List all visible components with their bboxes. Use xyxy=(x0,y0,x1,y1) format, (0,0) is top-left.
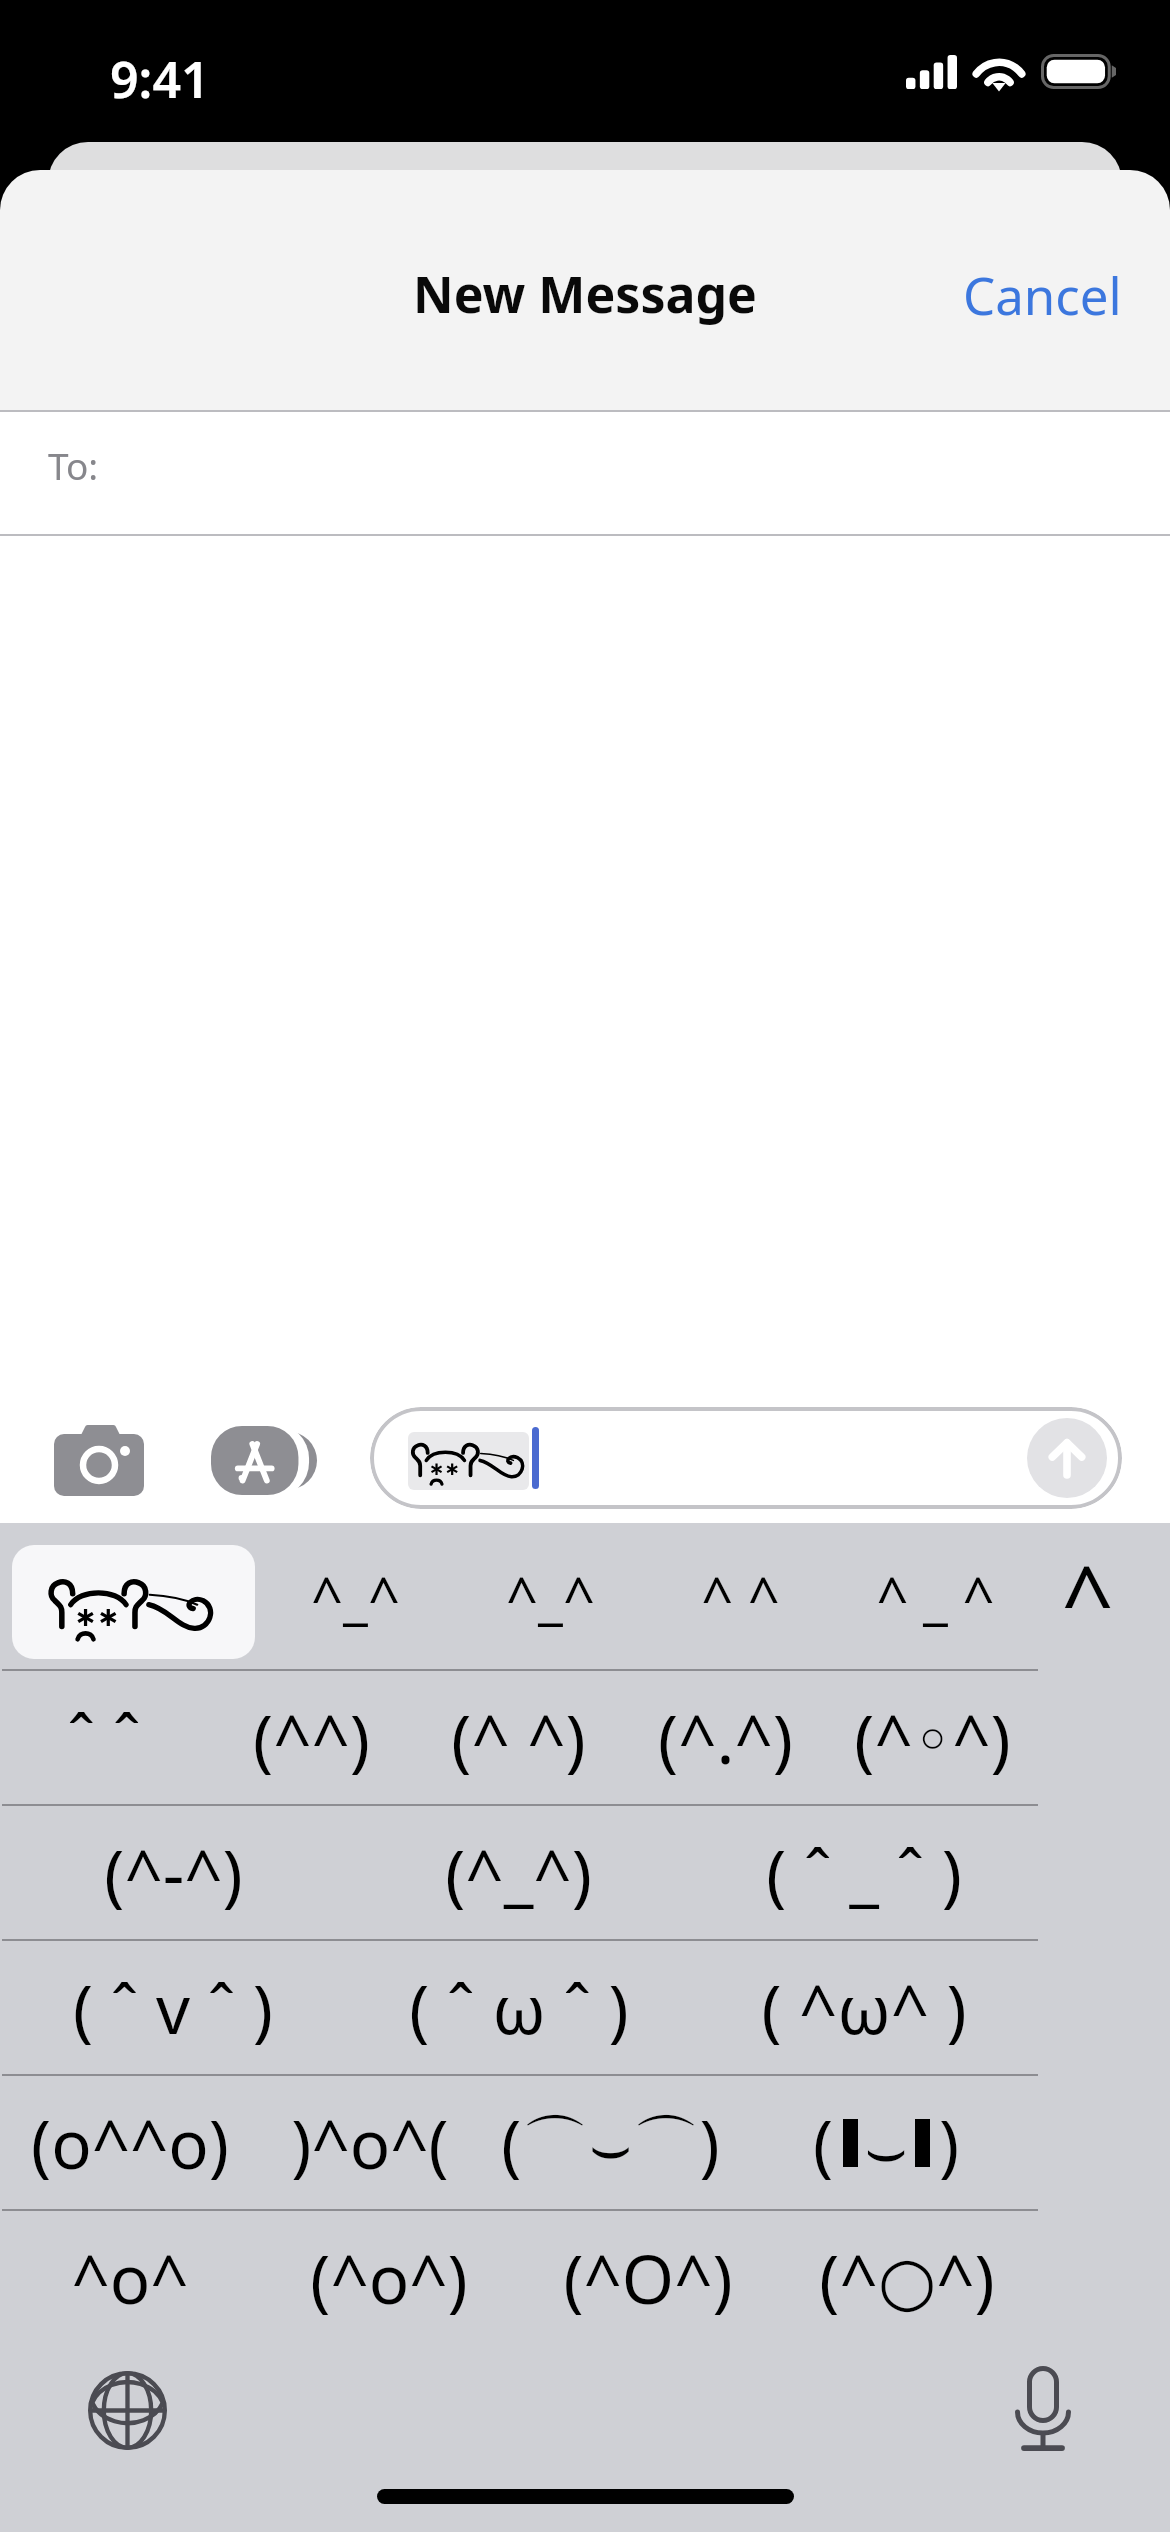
button[interactable]: Dictate xyxy=(983,2348,1103,2468)
button[interactable]: Send xyxy=(1027,1418,1107,1498)
button[interactable]: (^O^) xyxy=(518,2211,777,2344)
staticText: (^^) xyxy=(253,1692,370,1783)
staticText: (o^^o) xyxy=(31,2097,229,2188)
staticText: ^_^ xyxy=(311,1558,400,1634)
button[interactable]: )^o^( xyxy=(245,2076,495,2209)
staticText: (⌒⌣⌒) xyxy=(501,2097,720,2189)
button[interactable]: (o^^o) xyxy=(5,2076,255,2209)
staticText: (^○^) xyxy=(819,2232,995,2323)
button[interactable]: (^○^) xyxy=(777,2211,1036,2344)
staticText: New Message xyxy=(413,260,757,328)
staticText: Cancel xyxy=(963,260,1122,329)
button[interactable]: ^ xyxy=(1005,1523,1170,1669)
staticText: (^_^) xyxy=(445,1827,592,1918)
button[interactable] xyxy=(370,1407,1122,1509)
staticText: ^ ^ xyxy=(701,1558,780,1634)
staticText: ^ _ ^ xyxy=(876,1558,995,1634)
button[interactable]: (^o^) xyxy=(259,2211,518,2344)
button[interactable]: Camera xyxy=(34,1400,164,1520)
button[interactable]: ( ˆ ω ˆ ) xyxy=(346,1941,691,2074)
staticText: ⌣ xyxy=(864,2118,909,2185)
button[interactable]: ( ^ω^ ) xyxy=(691,1941,1036,2074)
staticText: (^O^) xyxy=(563,2232,733,2323)
staticText: ( ^ω^ ) xyxy=(761,1962,967,2053)
button[interactable]: ^_^ xyxy=(454,1523,646,1669)
staticText: (^.^) xyxy=(658,1692,793,1783)
button[interactable]: (^◦^) xyxy=(829,1671,1036,1804)
staticText: ( xyxy=(813,2097,834,2188)
staticText: 9:41 xyxy=(110,45,210,113)
staticText: ^ xyxy=(1061,1534,1114,1659)
button[interactable]: (^^) xyxy=(208,1671,415,1804)
staticText: ( ˆ ω ˆ ) xyxy=(409,1962,629,2053)
staticText: ) xyxy=(939,2097,960,2188)
staticText: (^◦^) xyxy=(854,1692,1011,1783)
button[interactable]: (^ ^) xyxy=(415,1671,622,1804)
staticText: (^-^) xyxy=(104,1827,243,1918)
button[interactable]: Change keyboard xyxy=(67,2350,187,2470)
button[interactable]: Apps xyxy=(190,1400,338,1520)
button[interactable]: ˆ ˆ xyxy=(0,1671,208,1804)
button[interactable]: (^.^) xyxy=(622,1671,829,1804)
button[interactable]: Cancel xyxy=(923,236,1170,353)
staticText: To: xyxy=(48,440,99,490)
staticText: ^_^ xyxy=(506,1558,595,1634)
button[interactable]: To: xyxy=(0,412,1170,534)
staticText: (^o^) xyxy=(310,2232,468,2323)
button[interactable]: (⌒⌣⌒) xyxy=(485,2076,735,2209)
button[interactable]: ( ˆ _ ˆ ) xyxy=(691,1806,1036,1939)
button[interactable]: ^o^ xyxy=(0,2211,259,2344)
staticText: ˆ ˆ xyxy=(67,1692,141,1783)
button[interactable]: ^ _ ^ xyxy=(839,1523,1031,1669)
staticText: ^o^ xyxy=(71,2232,189,2323)
staticText: )^o^( xyxy=(291,2097,449,2188)
staticText: (^ ^) xyxy=(451,1692,586,1783)
staticText: ( ˆ _ ˆ ) xyxy=(766,1827,962,1918)
button[interactable]: (^-^) xyxy=(0,1806,346,1939)
staticText: ( ˆ v ˆ ) xyxy=(73,1962,273,2053)
button[interactable]: ^ ^ xyxy=(644,1523,836,1669)
button[interactable]: ( xyxy=(761,2076,1011,2209)
button[interactable]: ^_^ xyxy=(259,1523,451,1669)
button[interactable]: (^_^) xyxy=(346,1806,691,1939)
button[interactable]: ( ˆ v ˆ ) xyxy=(0,1941,346,2074)
button[interactable] xyxy=(12,1545,255,1659)
